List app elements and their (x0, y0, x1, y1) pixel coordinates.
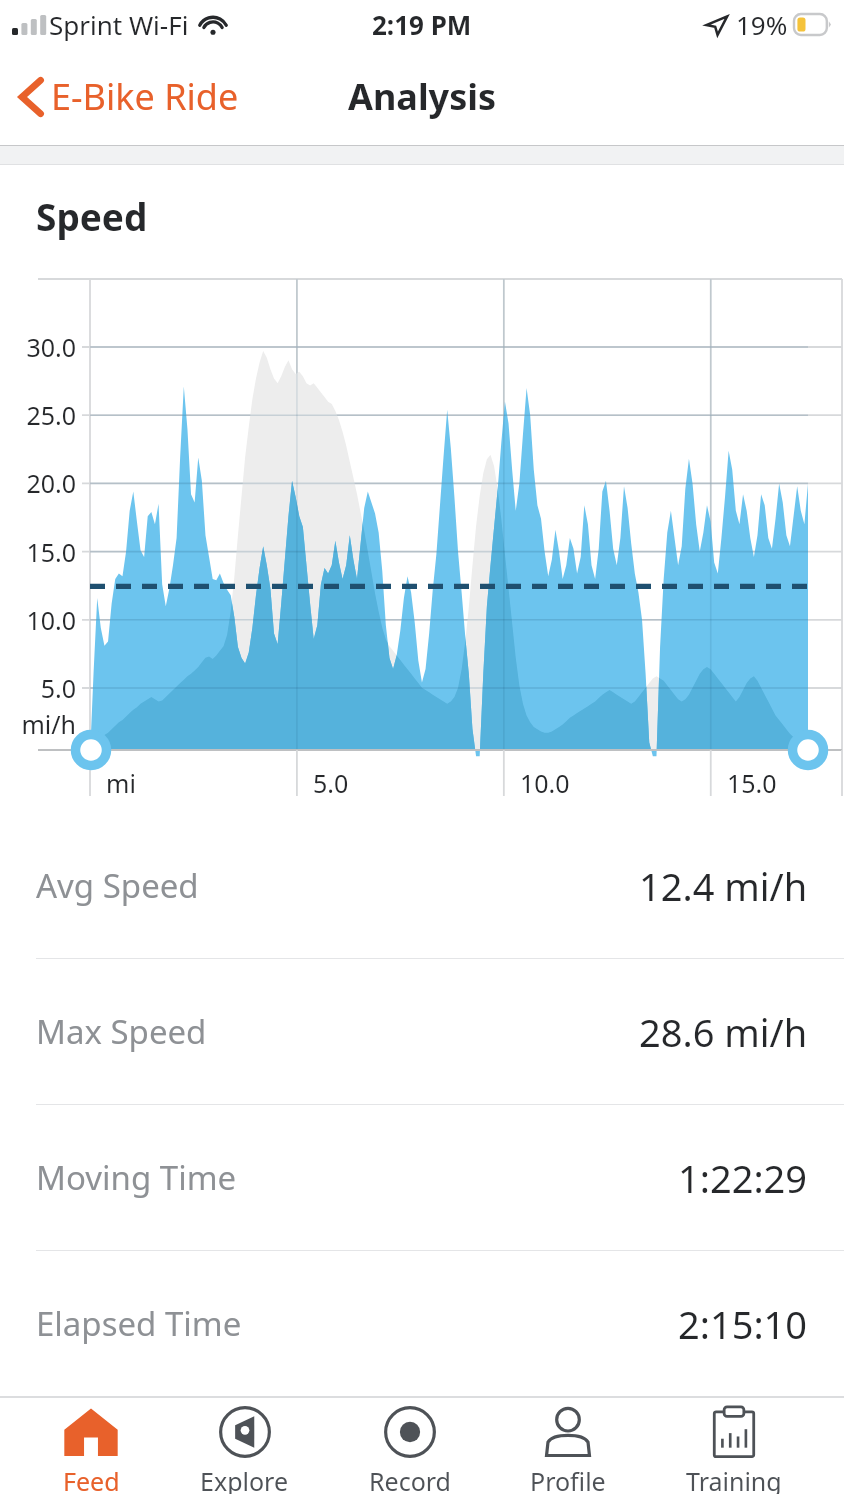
button[interactable]: Elapsed Time (0, 1251, 844, 1396)
staticText: Profile (530, 1464, 606, 1494)
staticText: Max Speed (36, 1009, 207, 1054)
staticText: Sprint Wi-Fi (49, 7, 189, 42)
button[interactable]: Moving Time (0, 1105, 844, 1251)
staticText: mi/h (0, 707, 76, 741)
staticText: 2:19 PM (372, 7, 472, 42)
staticText: 2:15:10 (678, 1298, 808, 1350)
staticText: 28.6 mi/h (639, 1006, 808, 1058)
staticText: E-Bike Ride (51, 72, 239, 121)
staticText: 5.0 (0, 671, 76, 705)
staticText: mi (106, 766, 136, 800)
staticText: Feed (63, 1464, 120, 1494)
staticText: 25.0 (0, 398, 76, 432)
staticText: 12.4 mi/h (639, 860, 808, 912)
button[interactable]: Back to E-Bike Ride (0, 62, 253, 131)
button[interactable]: Record (351, 1398, 469, 1500)
staticText: 10.0 (520, 766, 570, 800)
button[interactable]: Profile (512, 1398, 624, 1500)
staticText: 15.0 (727, 766, 777, 800)
button[interactable]: Avg Speed (0, 813, 844, 959)
staticText: 5.0 (313, 766, 349, 800)
button[interactable]: Explore (182, 1398, 307, 1500)
staticText: 20.0 (0, 466, 76, 500)
staticText: Avg Speed (36, 863, 199, 908)
staticText: 1:22:29 (678, 1152, 808, 1204)
staticText: Analysis (348, 72, 497, 121)
staticText: Training (686, 1464, 782, 1494)
staticText: Elapsed Time (36, 1301, 242, 1346)
staticText: 19% (736, 7, 788, 42)
staticText: 15.0 (0, 535, 76, 569)
staticText: Speed (36, 191, 148, 241)
staticText: Explore (200, 1464, 289, 1494)
button[interactable]: Feed (44, 1398, 138, 1500)
button[interactable]: Training (668, 1398, 800, 1500)
staticText: 10.0 (0, 603, 76, 637)
staticText: Moving Time (36, 1155, 237, 1200)
staticText: 30.0 (0, 330, 76, 364)
staticText: Record (369, 1464, 451, 1494)
button[interactable]: Max Speed (0, 959, 844, 1105)
